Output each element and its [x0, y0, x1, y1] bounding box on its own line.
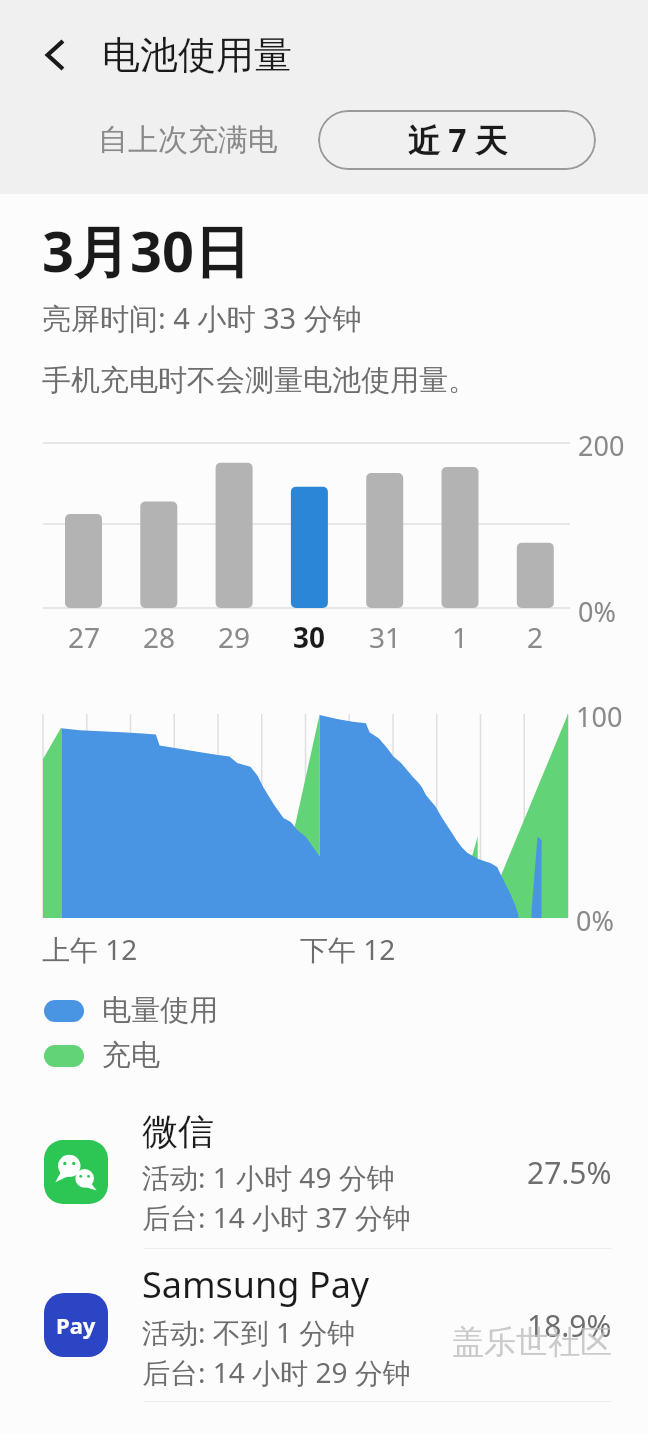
button[interactable]: 微信 — [0, 1096, 648, 1248]
button[interactable]: Pay — [0, 1249, 648, 1401]
staticText: 30 — [291, 618, 327, 656]
staticText: 31 — [367, 618, 403, 656]
staticText: 1 — [442, 618, 478, 656]
staticText: 3月30日 — [42, 212, 251, 288]
staticText: 手机充电时不会测量电池使用量。 — [42, 362, 477, 399]
staticText: 后台: 14 小时 37 分钟 — [142, 1198, 411, 1236]
staticText: 29 — [216, 618, 252, 656]
staticText: 电量使用 — [102, 992, 218, 1029]
staticText: 后台: 14 小时 29 分钟 — [142, 1353, 411, 1391]
staticText: 活动: 1 小时 49 分钟 — [142, 1158, 395, 1196]
staticText: 下午 12 — [300, 930, 396, 968]
staticText: 200 — [578, 427, 625, 464]
staticText: 亮屏时间: 4 小时 33 分钟 — [42, 298, 362, 338]
staticText: 微信 — [142, 1109, 214, 1154]
button[interactable]: 近 7 天 — [318, 110, 596, 170]
staticText: 电池使用量 — [102, 31, 292, 79]
staticText: 活动: 不到 1 分钟 — [142, 1313, 356, 1351]
staticText: 0% — [576, 902, 614, 939]
staticText: Pay — [56, 1310, 96, 1340]
staticText: 2 — [517, 618, 553, 656]
staticText: 自上次充满电 — [98, 121, 278, 159]
staticText: 近 7 天 — [408, 118, 507, 162]
staticText: 27 — [66, 618, 102, 656]
staticText: 充电 — [102, 1037, 160, 1074]
staticText: Samsung Pay — [142, 1260, 370, 1309]
staticText: 28 — [141, 618, 177, 656]
button[interactable]: 自上次充满电 — [80, 111, 296, 169]
staticText: 18.9% — [527, 1305, 612, 1346]
staticText: 盖乐世社区 — [452, 1322, 612, 1362]
staticText: 0% — [578, 593, 616, 630]
staticText: 27.5% — [527, 1152, 612, 1193]
staticText: 100 — [576, 698, 623, 735]
staticText: 上午 12 — [42, 930, 138, 968]
button[interactable]: Back — [24, 23, 88, 87]
